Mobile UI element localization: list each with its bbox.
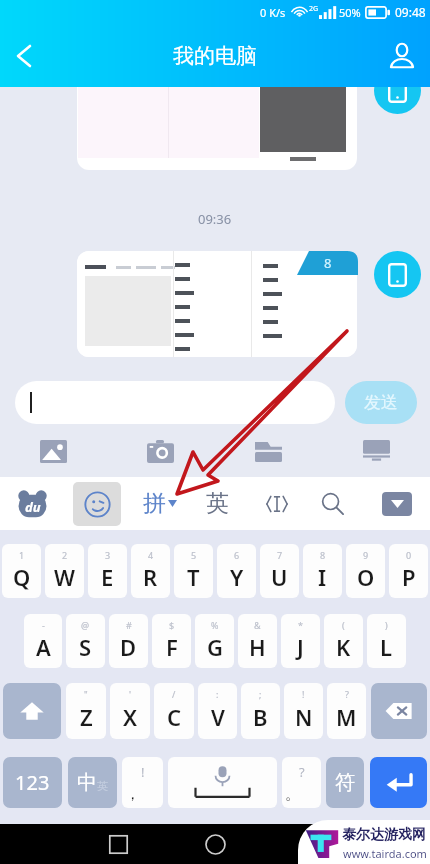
button[interactable]: 1 xyxy=(2,544,41,598)
staticText: ! xyxy=(141,763,145,781)
staticText: 发送 xyxy=(364,392,398,413)
button[interactable]: 2 xyxy=(45,544,84,598)
staticText: Z xyxy=(80,702,93,732)
staticText: 09:48 xyxy=(395,4,426,20)
staticText: S xyxy=(79,632,92,662)
staticText: 50% xyxy=(339,5,361,20)
button[interactable]: Move cursor xyxy=(260,487,294,521)
button[interactable]: Back xyxy=(0,24,48,87)
button[interactable]: " xyxy=(66,683,106,739)
staticText: 拼 xyxy=(143,489,166,518)
button[interactable]: ? xyxy=(327,683,366,739)
staticText: : xyxy=(216,688,219,700)
button[interactable]: 0 xyxy=(389,544,428,598)
button[interactable]: ) xyxy=(367,614,406,668)
staticText: 中 xyxy=(77,770,97,795)
button[interactable]: 4 xyxy=(131,544,170,598)
button[interactable]: Home xyxy=(191,824,239,864)
staticText: 09:36 xyxy=(198,210,232,228)
staticText: D xyxy=(120,632,137,662)
button[interactable]: 7 xyxy=(260,544,299,598)
staticText: 8 xyxy=(320,549,326,561)
button[interactable]: Backspace xyxy=(371,683,427,739)
button[interactable]: Enter xyxy=(370,757,427,808)
staticText: I xyxy=(318,562,327,592)
button[interactable]: ! xyxy=(122,757,163,808)
button[interactable]: $ xyxy=(152,614,191,668)
staticText: % xyxy=(211,619,219,631)
button[interactable]: : xyxy=(198,683,237,739)
button[interactable]: # xyxy=(109,614,148,668)
button[interactable]: & xyxy=(238,614,277,668)
button[interactable]: 9 xyxy=(346,544,385,598)
staticText: 我的电脑 xyxy=(173,43,257,69)
staticText: P xyxy=(402,562,416,592)
button[interactable]: 6 xyxy=(217,544,256,598)
button[interactable]: Space xyxy=(168,757,277,808)
staticText: ? xyxy=(299,763,305,781)
staticText: # xyxy=(126,619,132,631)
staticText: U xyxy=(271,562,288,592)
button[interactable]: 123 xyxy=(3,757,62,808)
button[interactable] xyxy=(77,251,357,357)
button[interactable]: ! xyxy=(284,683,323,739)
button[interactable]: / xyxy=(154,683,194,739)
button[interactable]: ( xyxy=(324,614,363,668)
button[interactable]: 中 xyxy=(68,757,117,808)
staticText: 符 xyxy=(335,770,355,795)
staticText: 4 xyxy=(148,549,154,561)
button[interactable]: * xyxy=(281,614,320,668)
staticText: 123 xyxy=(15,769,50,796)
staticText: 1 xyxy=(19,549,25,561)
staticText: 0 xyxy=(406,549,412,561)
staticText: - xyxy=(42,619,45,631)
staticText: G xyxy=(207,632,223,662)
button[interactable]: Camera xyxy=(107,430,214,472)
button[interactable]: @ xyxy=(66,614,105,668)
button[interactable]: Hide keyboard xyxy=(382,492,412,516)
button[interactable]: 5 xyxy=(174,544,213,598)
button[interactable]: 英 xyxy=(206,489,229,518)
button[interactable]: Baidu input xyxy=(10,482,54,526)
button[interactable]: ; xyxy=(241,683,280,739)
button[interactable]: Device avatar xyxy=(374,67,421,114)
staticText: ' xyxy=(129,688,132,700)
button[interactable]: 3 xyxy=(88,544,127,598)
button[interactable]: Files xyxy=(214,430,322,472)
button[interactable]: 拼 xyxy=(143,489,177,518)
staticText: L xyxy=(380,632,393,662)
staticText: J xyxy=(297,632,304,662)
button[interactable]: Gallery xyxy=(0,430,107,472)
staticText: 0 K/s xyxy=(260,5,286,20)
button[interactable]: Shift xyxy=(3,683,61,739)
button[interactable] xyxy=(15,381,335,424)
staticText: ) xyxy=(385,619,388,631)
staticText: ， xyxy=(125,785,140,804)
button[interactable]: - xyxy=(24,614,62,668)
button[interactable]: 8 xyxy=(303,544,342,598)
button[interactable]: 发送 xyxy=(345,381,417,424)
staticText: 7 xyxy=(277,549,283,561)
staticText: 5 xyxy=(191,549,197,561)
staticText: ( xyxy=(342,619,345,631)
staticText: & xyxy=(254,619,261,631)
staticText: 2 xyxy=(62,549,68,561)
staticText: 。 xyxy=(285,785,300,804)
button[interactable]: Contact info xyxy=(374,24,430,87)
button[interactable]: Desktop xyxy=(322,430,430,472)
staticText: Y xyxy=(230,562,244,592)
button[interactable]: % xyxy=(195,614,234,668)
staticText: F xyxy=(166,632,178,662)
button[interactable]: Device avatar xyxy=(374,251,421,298)
button[interactable]: ? xyxy=(282,757,321,808)
staticText: 3 xyxy=(105,549,111,561)
staticText: www.tairda.com xyxy=(343,846,427,861)
staticText: B xyxy=(253,702,268,732)
staticText: T xyxy=(187,562,200,592)
button[interactable]: ' xyxy=(110,683,150,739)
button[interactable]: 符 xyxy=(326,757,364,808)
button[interactable]: Recents xyxy=(94,824,142,864)
staticText: E xyxy=(101,562,114,592)
button[interactable]: Search xyxy=(314,485,352,523)
button[interactable]: Emoji xyxy=(73,482,121,526)
